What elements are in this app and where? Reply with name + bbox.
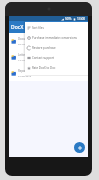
button[interactable]: Sort files (25, 23, 88, 33)
staticText: DocX (11, 24, 24, 31)
staticText: 50% (65, 17, 72, 21)
button[interactable]: Rate DocX to Doc (25, 63, 88, 73)
staticText: 8 Aug 2019 (18, 74, 32, 77)
button[interactable]: Document1.docx (9, 33, 88, 49)
staticText: 22 Aug 2019 (18, 42, 33, 45)
staticText: Document1.docx (18, 37, 42, 41)
button[interactable]: Letter draft.docx (9, 49, 88, 65)
button[interactable]: Add file (74, 142, 85, 153)
staticText: Report 2019.docx (18, 69, 42, 73)
button[interactable]: Restore purchase (25, 43, 88, 53)
staticText: Letter draft.docx (18, 53, 41, 57)
button[interactable]: Contact support (25, 53, 88, 63)
staticText: Contact support (32, 56, 54, 60)
staticText: Sort files (32, 26, 44, 30)
button[interactable]: Report 2019.docx (9, 65, 88, 81)
staticText: 13:00 (77, 17, 86, 21)
staticText: Rate DocX to Doc (32, 66, 56, 70)
staticText: 14 Aug 2019 (18, 58, 33, 61)
button[interactable]: Purchase immediate conversions (25, 33, 88, 43)
staticText: Purchase immediate conversions (32, 36, 77, 40)
staticText: Restore purchase (32, 46, 56, 50)
